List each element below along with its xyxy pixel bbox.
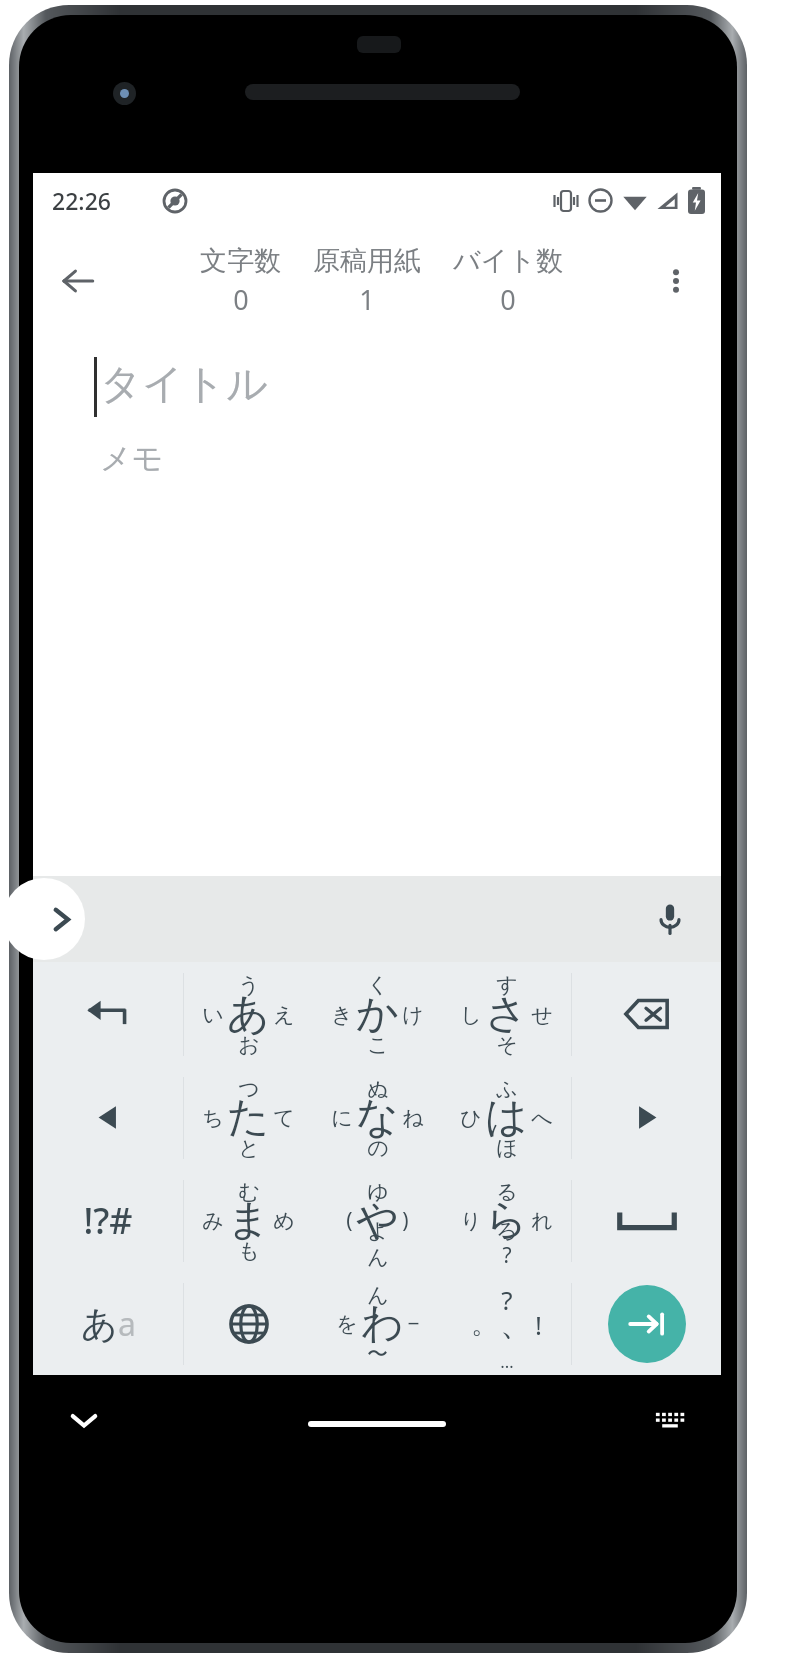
staticText: は bbox=[485, 1091, 528, 1144]
staticText: a bbox=[118, 1302, 136, 1346]
staticText: え bbox=[273, 1002, 295, 1028]
button[interactable]: う bbox=[184, 962, 313, 1066]
staticText: ひ bbox=[460, 1105, 482, 1131]
staticText: を bbox=[336, 1311, 358, 1337]
button[interactable]: ? bbox=[442, 1272, 571, 1375]
staticText: む bbox=[238, 1179, 260, 1205]
button[interactable]: Back bbox=[47, 250, 109, 312]
staticText: 1 bbox=[359, 281, 375, 318]
staticText: こ bbox=[367, 1032, 389, 1058]
staticText: ( bbox=[346, 1206, 353, 1235]
button[interactable]: !?# bbox=[33, 1169, 183, 1272]
staticText: み bbox=[202, 1208, 224, 1234]
button[interactable]: ん bbox=[313, 1272, 442, 1375]
button[interactable]: Voice input bbox=[641, 890, 699, 948]
button[interactable]: 原稿用紙 bbox=[309, 244, 425, 318]
staticText: ち bbox=[202, 1105, 224, 1131]
button[interactable]: Enter bbox=[572, 1272, 721, 1375]
button[interactable]: く bbox=[313, 962, 442, 1066]
button[interactable] bbox=[572, 1169, 721, 1272]
button[interactable]: Expand suggestions bbox=[3, 878, 85, 960]
button[interactable] bbox=[33, 1066, 183, 1169]
staticText: バイト数 bbox=[453, 244, 563, 278]
button[interactable] bbox=[184, 1272, 313, 1375]
button[interactable] bbox=[572, 1066, 721, 1169]
button[interactable]: バイト数 bbox=[449, 244, 567, 318]
staticText: 、 bbox=[500, 1304, 532, 1344]
staticText: う bbox=[238, 972, 260, 998]
staticText: 原稿用紙 bbox=[313, 244, 421, 278]
staticText: き bbox=[331, 1002, 353, 1028]
staticText: へ bbox=[531, 1105, 553, 1131]
staticText: ん bbox=[367, 1282, 389, 1308]
staticText: そ bbox=[496, 1032, 518, 1058]
staticText: お bbox=[238, 1032, 260, 1058]
staticText: り bbox=[460, 1208, 482, 1234]
staticText: て bbox=[273, 1105, 295, 1131]
staticText: ら bbox=[485, 1194, 528, 1247]
button[interactable]: す bbox=[442, 962, 571, 1066]
button[interactable]: る bbox=[442, 1169, 571, 1272]
button[interactable]: ふ bbox=[442, 1066, 571, 1169]
button[interactable]: あ bbox=[33, 1272, 183, 1375]
staticText: も bbox=[238, 1238, 260, 1264]
staticText: !?# bbox=[83, 1196, 133, 1245]
staticText: ) bbox=[402, 1206, 409, 1235]
staticText: メモ bbox=[100, 439, 164, 478]
staticText: つ bbox=[238, 1076, 260, 1102]
staticText: ! bbox=[535, 1307, 542, 1342]
staticText: ? bbox=[501, 1282, 513, 1317]
button[interactable]: Hide keyboard bbox=[53, 1389, 115, 1451]
staticText: ま bbox=[227, 1194, 270, 1247]
staticText: れ bbox=[531, 1208, 553, 1234]
staticText: ろ bbox=[496, 1218, 518, 1244]
staticText: あ bbox=[227, 988, 270, 1041]
staticText: か bbox=[356, 988, 399, 1041]
staticText: ぬ bbox=[367, 1076, 389, 1102]
staticText: あ bbox=[81, 1301, 118, 1346]
staticText: − bbox=[407, 1309, 420, 1338]
staticText: ? bbox=[502, 1241, 512, 1270]
staticText: わ bbox=[361, 1297, 404, 1350]
staticText: や bbox=[356, 1194, 399, 1247]
staticText: る bbox=[496, 1179, 518, 1205]
staticText: な bbox=[356, 1091, 399, 1144]
staticText: ほ bbox=[496, 1135, 518, 1161]
staticText: 〜 bbox=[367, 1341, 388, 1367]
staticText: 0 bbox=[233, 281, 249, 318]
button[interactable] bbox=[33, 962, 183, 1066]
staticText: 22:26 bbox=[52, 185, 111, 216]
button[interactable]: つ bbox=[184, 1066, 313, 1169]
staticText: た bbox=[227, 1091, 270, 1144]
button[interactable]: む bbox=[184, 1169, 313, 1272]
staticText: 。 bbox=[471, 1308, 497, 1341]
staticText: ね bbox=[402, 1105, 424, 1131]
staticText: し bbox=[460, 1002, 482, 1028]
staticText: よ bbox=[367, 1218, 389, 1244]
button[interactable]: More options bbox=[645, 250, 707, 312]
staticText: す bbox=[496, 972, 518, 998]
staticText: ふ bbox=[496, 1076, 518, 1102]
staticText: さ bbox=[485, 988, 528, 1041]
staticText: ん bbox=[367, 1244, 389, 1270]
button[interactable]: ゆ bbox=[313, 1169, 442, 1272]
staticText: 文字数 bbox=[200, 244, 281, 278]
staticText: ゆ bbox=[367, 1179, 389, 1205]
button[interactable] bbox=[572, 962, 721, 1066]
staticText: タイトル bbox=[100, 359, 268, 411]
staticText: の bbox=[367, 1135, 389, 1161]
staticText: と bbox=[238, 1135, 260, 1161]
staticText: く bbox=[367, 972, 389, 998]
staticText: い bbox=[202, 1002, 224, 1028]
staticText: せ bbox=[531, 1002, 553, 1028]
staticText: め bbox=[273, 1208, 295, 1234]
staticText: 0 bbox=[500, 281, 516, 318]
staticText: … bbox=[500, 1350, 514, 1373]
staticText: に bbox=[331, 1105, 353, 1131]
button[interactable]: ぬ bbox=[313, 1066, 442, 1169]
staticText: け bbox=[402, 1002, 424, 1028]
button[interactable]: 文字数 bbox=[196, 244, 285, 318]
button[interactable]: Switch keyboard bbox=[639, 1389, 701, 1451]
